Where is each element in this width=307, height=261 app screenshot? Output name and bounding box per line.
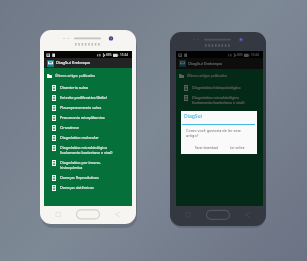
staticText: DiagSui Embrapa [188, 61, 222, 67]
staticText: Fazer download [195, 146, 218, 150]
staticText: Diagnóstico histopatológico [192, 85, 241, 90]
staticText: Enterite proliferativa (ileíte) [60, 95, 108, 100]
staticText: 86% [237, 53, 243, 57]
staticText: Diagnóstico por imuno- histoquímica [60, 160, 101, 170]
staticText: Diagnóstico molecular [60, 135, 99, 140]
button[interactable]: Home [170, 206, 266, 226]
staticText: DiagSui [184, 113, 202, 120]
staticText: Diagnóstico microbiológico (isolamento b… [60, 145, 113, 155]
staticText: Disenteria suína [60, 85, 89, 90]
staticText: 86% [106, 53, 112, 57]
button[interactable]: Últimos artigos publicados [44, 68, 132, 83]
staticText: 15:34 [120, 53, 129, 57]
staticText: Doenças sistêmicas [60, 185, 94, 190]
staticText: DiagSui Embrapa [56, 60, 90, 66]
button[interactable]: Últimos artigos publicados [176, 69, 263, 83]
button[interactable]: Ler online [227, 144, 247, 151]
staticText: 15:34 [251, 53, 260, 57]
staticText: Diagnóstico microbiológico (isolamento b… [192, 95, 245, 105]
staticText: Como você gostaria de ler este artigo? [186, 128, 241, 138]
other: App icon [179, 60, 186, 67]
button[interactable]: Diagnóstico microbiológico (isolamento b… [44, 143, 132, 158]
button[interactable]: App icon [44, 58, 132, 68]
staticText: Circovirose [60, 125, 80, 130]
button[interactable]: Diagnóstico por imuno- histoquímica [44, 158, 132, 173]
staticText: Doenças Reprodutivas [60, 175, 99, 180]
button[interactable]: App icon [176, 58, 263, 69]
button[interactable]: Diagnóstico histopatológico [176, 83, 263, 93]
staticText: Ler online [230, 146, 245, 150]
button[interactable]: Pneumonia micoplásmica [44, 113, 132, 123]
button[interactable]: Circovirose [44, 123, 132, 133]
button[interactable]: Diagnóstico microbiológico (isolamento b… [176, 93, 263, 108]
button[interactable]: Fazer download [193, 144, 219, 151]
button[interactable]: Pleuropneumonia suína [44, 103, 132, 113]
button[interactable]: Doenças sistêmicas [44, 183, 132, 193]
button[interactable]: Home [40, 206, 136, 225]
staticText: Pneumonia micoplásmica [60, 115, 105, 120]
staticText: Últimos artigos publicados [55, 74, 95, 78]
other: App icon [47, 60, 54, 67]
staticText: Últimos artigos publicados [187, 74, 227, 78]
button[interactable]: Doenças Reprodutivas [44, 173, 132, 183]
staticText: Pleuropneumonia suína [60, 105, 102, 110]
button[interactable]: Disenteria suína [44, 83, 132, 93]
button[interactable]: Diagnóstico molecular [44, 133, 132, 143]
button[interactable]: Enterite proliferativa (ileíte) [44, 93, 132, 103]
